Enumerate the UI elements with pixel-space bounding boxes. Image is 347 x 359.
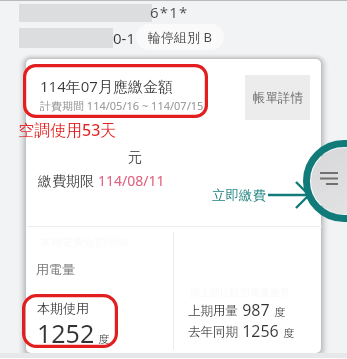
staticText: 上期用量 bbox=[188, 303, 238, 319]
staticText: 輪停組別 B bbox=[148, 28, 212, 46]
button[interactable]: Menu bbox=[311, 148, 347, 214]
staticText: 987 bbox=[238, 299, 274, 321]
staticText: 0-1 bbox=[113, 28, 135, 48]
staticText: 114年07月應繳金額 bbox=[40, 76, 173, 96]
staticText: 繳費期限 bbox=[38, 171, 98, 190]
staticText: 本期使用 bbox=[37, 300, 89, 316]
staticText: 度 bbox=[274, 305, 285, 319]
staticText: 114/08/11 bbox=[98, 171, 165, 190]
staticText: 1256 bbox=[238, 320, 283, 342]
staticText: 1252 bbox=[37, 316, 95, 350]
staticText: 6*1* bbox=[150, 2, 189, 22]
button[interactable]: 帳單詳情 bbox=[245, 75, 310, 120]
staticText: 立即繳費 bbox=[212, 187, 266, 204]
staticText: 度 bbox=[98, 332, 109, 346]
staticText: 元 bbox=[128, 149, 142, 167]
staticText: 帳單詳情 bbox=[253, 90, 303, 106]
staticText: 計費期間 114/05/16 ~ 114/07/15 bbox=[40, 98, 204, 113]
staticText: 去年同期 bbox=[188, 324, 238, 340]
button[interactable]: 輪停組別 B bbox=[136, 24, 224, 50]
staticText: 空調使用53天 bbox=[18, 119, 117, 141]
staticText: 用電量 bbox=[36, 261, 75, 277]
staticText: 度 bbox=[283, 326, 294, 340]
